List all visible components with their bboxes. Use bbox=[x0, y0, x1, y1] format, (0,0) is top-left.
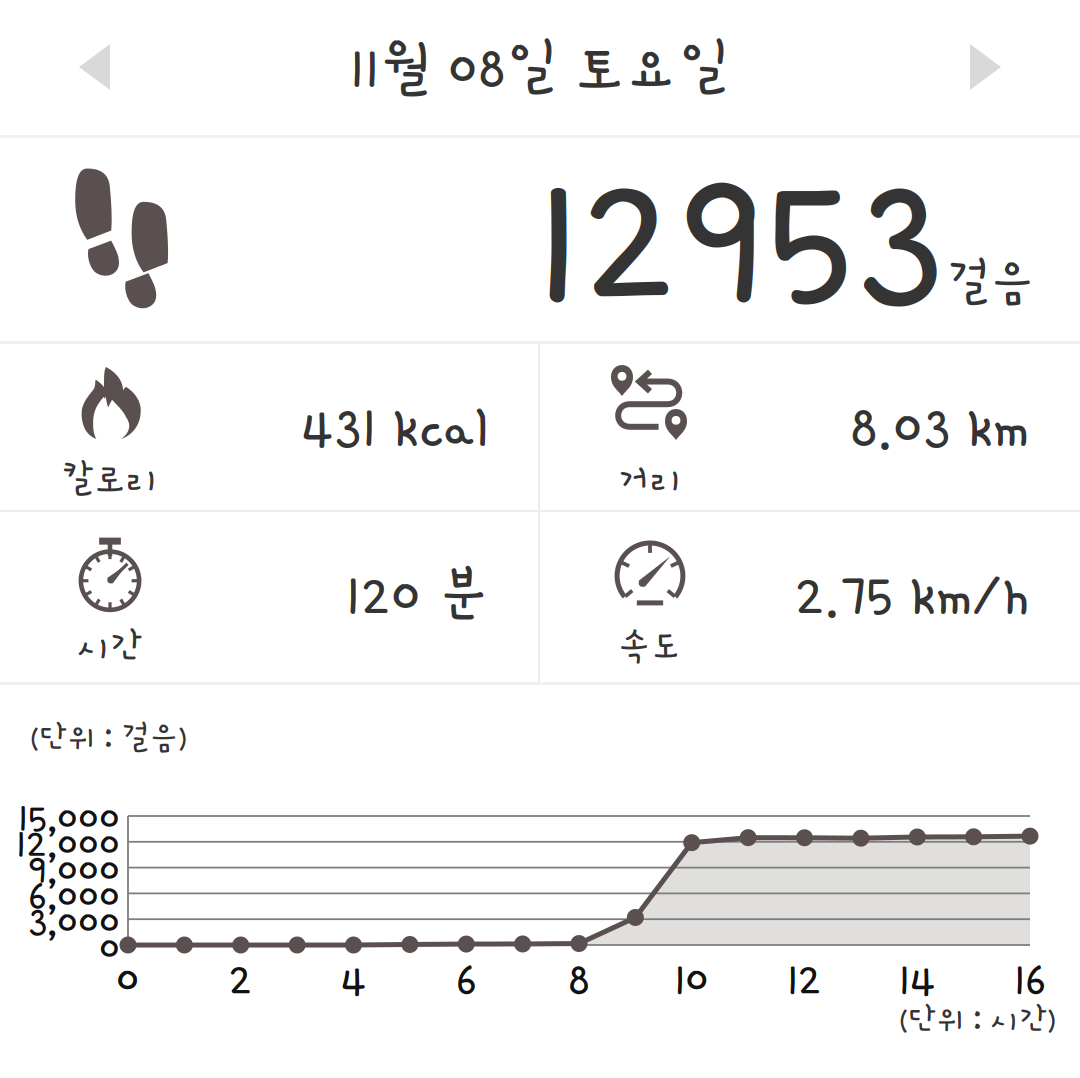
staticText: 120 분 bbox=[346, 563, 489, 627]
staticText: 12953 bbox=[535, 134, 944, 342]
staticText: 12,000 bbox=[16, 820, 120, 866]
button[interactable]: Next day bbox=[970, 44, 1001, 90]
staticText: 16 bbox=[1014, 954, 1046, 1004]
staticText: 2.75 km/h bbox=[795, 563, 1029, 627]
staticText: 걸음 bbox=[948, 256, 1034, 310]
staticText: 15,000 bbox=[18, 794, 120, 840]
staticText: (단위 : 걸음) bbox=[30, 721, 187, 755]
staticText: 속도 bbox=[618, 627, 682, 667]
staticText: 칼로리 bbox=[62, 459, 158, 499]
staticText: 6 bbox=[456, 954, 477, 1004]
button[interactable]: 속도 bbox=[540, 512, 1080, 680]
staticText: 2 bbox=[229, 954, 253, 1004]
staticText: 0 bbox=[99, 924, 120, 970]
staticText: (단위 : 시간) bbox=[899, 1003, 1056, 1037]
staticText: 거리 bbox=[618, 459, 682, 499]
staticText: 시간 bbox=[78, 627, 142, 667]
staticText: 11월 08일 토요일 bbox=[350, 36, 730, 100]
staticText: 431 kcal bbox=[301, 395, 489, 459]
staticText: 12 bbox=[787, 954, 822, 1004]
button[interactable]: 12953 bbox=[0, 138, 1080, 341]
staticText: 10 bbox=[674, 954, 709, 1004]
staticText: 14 bbox=[899, 954, 936, 1004]
staticText: 8.03 km bbox=[850, 395, 1029, 459]
button[interactable]: 시간 bbox=[0, 512, 540, 680]
button[interactable]: 칼로리 bbox=[0, 344, 540, 512]
staticText: 3,000 bbox=[28, 898, 120, 944]
staticText: 4 bbox=[340, 954, 366, 1004]
staticText: 9,000 bbox=[28, 846, 120, 892]
button[interactable]: Previous day bbox=[79, 44, 110, 90]
staticText: 0 bbox=[116, 954, 140, 1004]
staticText: 8 bbox=[568, 954, 590, 1004]
button[interactable]: 거리 bbox=[540, 344, 1080, 512]
staticText: 6,000 bbox=[28, 872, 120, 918]
